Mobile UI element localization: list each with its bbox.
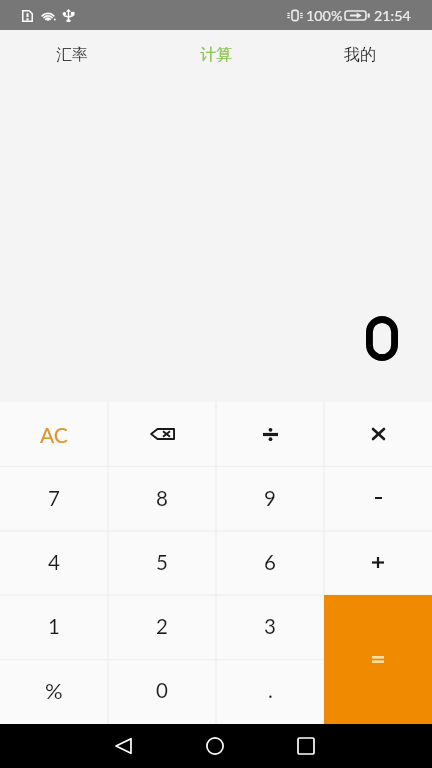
staticText: 100% — [306, 7, 343, 24]
staticText: 汇率 — [56, 45, 88, 65]
staticText: 3 — [264, 614, 276, 639]
staticText: 计算 — [200, 45, 232, 65]
staticText: % — [45, 677, 63, 703]
button[interactable]: 0 — [108, 658, 216, 722]
staticText: 21:54 — [374, 7, 411, 24]
staticText: . — [268, 678, 273, 703]
staticText: 2 — [156, 614, 168, 639]
button[interactable]: 4 — [0, 530, 108, 594]
staticText: 8 — [156, 486, 168, 511]
staticText: 0 — [156, 678, 168, 703]
button[interactable]: 7 — [0, 466, 108, 530]
staticText: 5 — [156, 550, 168, 575]
button[interactable]: 8 — [108, 466, 216, 530]
button[interactable]: 3 — [216, 594, 324, 658]
staticText: 7 — [48, 486, 60, 511]
staticText: AC — [40, 422, 68, 447]
staticText: 9 — [264, 486, 276, 511]
button[interactable]: Minus — [324, 466, 432, 530]
button[interactable]: 6 — [216, 530, 324, 594]
button[interactable]: . — [216, 658, 324, 722]
button[interactable]: Backspace — [108, 402, 216, 466]
staticText: 6 — [264, 550, 276, 575]
staticText: 4 — [48, 550, 60, 575]
button[interactable]: 5 — [108, 530, 216, 594]
staticText: 1 — [48, 614, 60, 639]
button[interactable]: AC — [0, 402, 108, 466]
button[interactable]: 计算 — [144, 30, 288, 79]
button[interactable]: Plus — [324, 530, 432, 594]
button[interactable]: 汇率 — [0, 30, 144, 79]
button[interactable]: Divide — [216, 402, 324, 466]
button[interactable]: 1 — [0, 594, 108, 658]
button[interactable]: 我的 — [288, 30, 432, 79]
button[interactable]: Back — [93, 724, 154, 768]
button[interactable]: Recents — [275, 724, 336, 768]
button[interactable]: 9 — [216, 466, 324, 530]
button[interactable]: % — [0, 658, 108, 722]
button[interactable]: Multiply — [324, 402, 432, 466]
button[interactable]: 2 — [108, 594, 216, 658]
staticText: 我的 — [344, 45, 376, 65]
button[interactable]: Equals — [324, 595, 432, 724]
button[interactable]: Home — [184, 724, 245, 768]
